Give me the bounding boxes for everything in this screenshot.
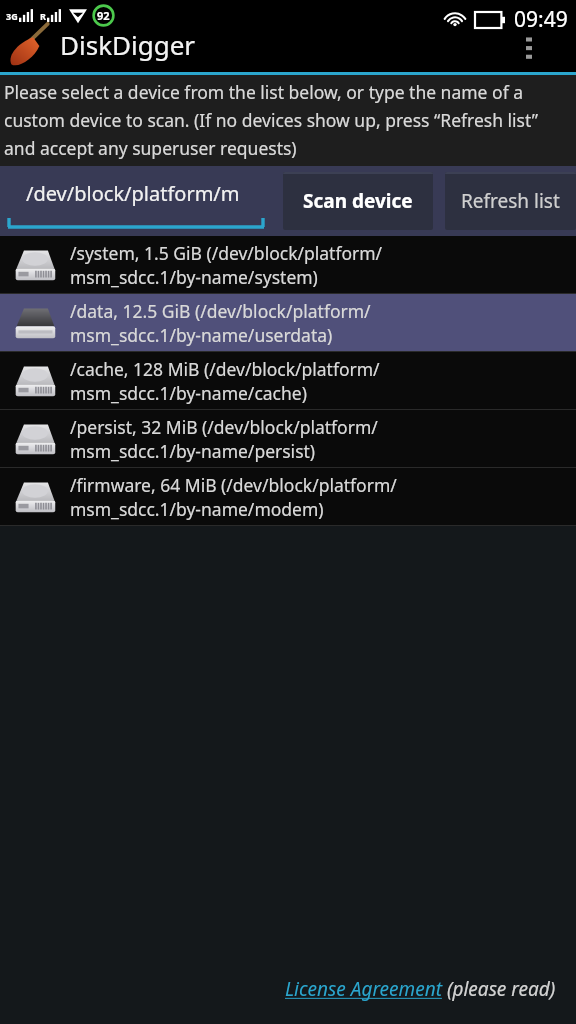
- staticText: Refresh list: [461, 188, 560, 214]
- staticText: /data, 12.5 GiB (/dev/block/platform/: [70, 299, 371, 323]
- staticText: License Agreement: [285, 976, 442, 1002]
- staticText: Scan device: [303, 188, 413, 214]
- button[interactable]: Scan device: [283, 172, 433, 230]
- staticText: /cache, 128 MiB (/dev/block/platform/: [70, 357, 380, 381]
- button[interactable]: /persist, 32 MiB (/dev/block/platform/: [0, 410, 576, 467]
- button[interactable]: /firmware, 64 MiB (/dev/block/platform/: [0, 468, 576, 525]
- button[interactable]: License Agreement: [285, 976, 442, 1002]
- staticText: msm_sdcc.1/by-name/system): [70, 265, 318, 289]
- staticText: msm_sdcc.1/by-name/persist): [70, 439, 316, 463]
- staticText: 3G: [6, 10, 18, 22]
- button[interactable]: /system, 1.5 GiB (/dev/block/platform/: [0, 236, 576, 293]
- staticText: 92: [97, 8, 110, 23]
- staticText: /system, 1.5 GiB (/dev/block/platform/: [70, 241, 383, 265]
- staticText: (please read): [442, 976, 556, 1002]
- staticText: 09:49: [514, 5, 568, 34]
- button[interactable]: /dev/block/platform/m­: [4, 172, 268, 230]
- staticText: msm_sdcc.1/by-name/userdata): [70, 323, 333, 347]
- button[interactable]: /data, 12.5 GiB (/dev/block/platform/: [0, 294, 576, 351]
- staticText: /persist, 32 MiB (/dev/block/platform/: [70, 415, 378, 439]
- button[interactable]: More options: [518, 33, 540, 63]
- staticText: /firmware, 64 MiB (/dev/block/platform/: [70, 473, 397, 497]
- staticText: DiskDigger: [60, 27, 196, 62]
- staticText: Please select a device from the list bel…: [4, 80, 572, 160]
- staticText: /dev/block/platform/m­: [26, 180, 240, 207]
- staticText: msm_sdcc.1/by-name/cache): [70, 381, 307, 405]
- button[interactable]: Refresh list: [445, 172, 576, 230]
- staticText: R: [40, 10, 46, 22]
- staticText: msm_sdcc.1/by-name/modem): [70, 497, 324, 521]
- button[interactable]: /cache, 128 MiB (/dev/block/platform/: [0, 352, 576, 409]
